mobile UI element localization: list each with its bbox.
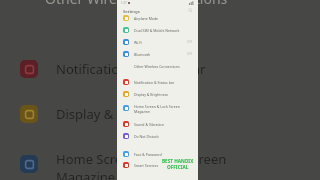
button[interactable]	[117, 36, 198, 48]
staticText: Home Screen & Lock Screen	[134, 104, 180, 109]
staticText: Display & Brightness	[134, 92, 169, 97]
button[interactable]	[117, 159, 198, 171]
staticText: Notification & Status bar	[56, 60, 206, 78]
button[interactable]	[117, 76, 198, 88]
staticText: Other Wireless Connections	[45, 0, 228, 8]
staticText: BEST HANDIX	[162, 158, 194, 164]
staticText: Dual SIM & Mobile Network	[134, 28, 180, 33]
staticText: Off	[187, 52, 192, 56]
staticText: Notification & Status bar	[134, 80, 175, 85]
staticText: Settings	[123, 8, 140, 14]
button[interactable]	[117, 102, 198, 114]
staticText: OFFICIAL	[167, 164, 189, 170]
button[interactable]	[117, 130, 198, 142]
button[interactable]: Search	[188, 8, 193, 13]
staticText: Other Wireless Connections	[134, 64, 180, 69]
staticText: Magazine	[134, 109, 150, 114]
staticText: 1:27	[121, 1, 127, 5]
staticText: Sound & Vibration	[134, 122, 164, 127]
staticText: Home Screen & Lock Screen	[56, 150, 227, 168]
staticText: Face & Password	[134, 152, 162, 157]
staticText: Do Not Disturb	[134, 134, 159, 139]
button[interactable]	[117, 88, 198, 100]
button[interactable]	[117, 48, 198, 60]
staticText: Off	[187, 40, 192, 44]
staticText: Smart Services	[134, 163, 159, 168]
button[interactable]	[117, 118, 198, 130]
button[interactable]	[117, 148, 198, 160]
staticText: Airplane Mode	[134, 16, 159, 21]
staticText: Magazine	[56, 168, 116, 180]
button[interactable]	[117, 12, 198, 24]
staticText: Bluetooth	[134, 52, 151, 57]
staticText: Wi-Fi	[134, 40, 143, 45]
button[interactable]	[117, 60, 198, 72]
staticText: Display & Brightness	[56, 105, 183, 123]
button[interactable]	[117, 24, 198, 36]
